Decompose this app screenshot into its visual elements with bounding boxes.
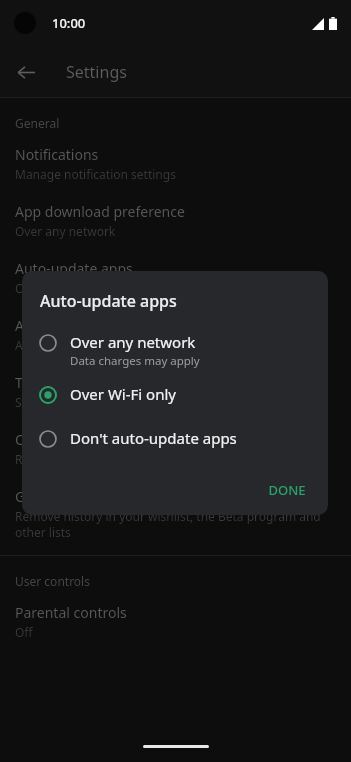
staticText: Clear local search history bbox=[15, 430, 179, 449]
staticText: Notifications bbox=[15, 145, 99, 164]
staticText: General bbox=[15, 115, 60, 131]
staticText: Settings bbox=[66, 61, 127, 83]
staticText: Remove all searches that you've made on … bbox=[15, 451, 311, 467]
staticText: Any network bbox=[15, 337, 86, 353]
staticText: Don't auto-update apps bbox=[70, 428, 237, 448]
staticText: Over any network bbox=[15, 223, 116, 239]
button[interactable]: Parental controls bbox=[0, 593, 351, 648]
staticText: User controls bbox=[15, 573, 90, 589]
button[interactable]: Auto-play videos bbox=[0, 304, 351, 361]
button[interactable]: Auto-update apps bbox=[0, 247, 351, 304]
staticText: 10:00 bbox=[52, 14, 86, 32]
button[interactable]: Notifications bbox=[0, 135, 351, 190]
button[interactable]: Themes bbox=[0, 361, 351, 418]
staticText: Auto-update apps bbox=[40, 290, 177, 312]
staticText: App download preference bbox=[15, 202, 185, 221]
button[interactable]: App download preference bbox=[0, 190, 351, 247]
staticText: Themes bbox=[15, 373, 68, 392]
button[interactable]: Google Play preferences bbox=[0, 475, 351, 555]
button[interactable]: Clear local search history bbox=[0, 418, 351, 475]
staticText: Manage notification settings bbox=[15, 166, 176, 182]
button[interactable]: DONE bbox=[256, 473, 318, 507]
staticText: Over Wi-Fi only bbox=[15, 280, 100, 296]
button[interactable]: Over any network bbox=[22, 326, 328, 375]
staticText: System default bbox=[15, 394, 99, 410]
button[interactable]: Over Wi-Fi only bbox=[22, 378, 328, 411]
staticText: Over any network bbox=[70, 332, 196, 352]
staticText: Remove history in your wishlist, the Bet… bbox=[15, 508, 333, 541]
staticText: Parental controls bbox=[15, 603, 127, 622]
staticText: Auto-play videos bbox=[15, 316, 124, 335]
staticText: Off bbox=[15, 624, 33, 640]
staticText: DONE bbox=[268, 481, 306, 499]
staticText: Over Wi-Fi only bbox=[70, 384, 176, 404]
staticText: Google Play preferences bbox=[15, 487, 175, 506]
staticText: Data charges may apply bbox=[70, 353, 200, 369]
staticText: Auto-update apps bbox=[15, 259, 133, 278]
button[interactable]: Back bbox=[8, 54, 44, 90]
button[interactable]: Don't auto-update apps bbox=[22, 422, 328, 455]
